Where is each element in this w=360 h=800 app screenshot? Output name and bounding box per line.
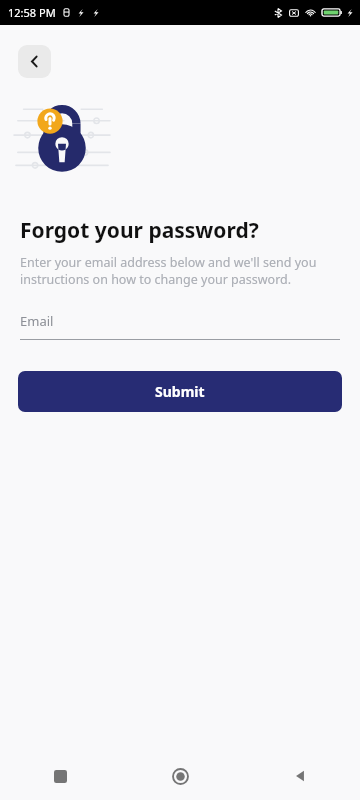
staticText: 12:58 PM (8, 5, 56, 20)
button[interactable]: Home (120, 752, 240, 800)
button[interactable]: Email (20, 312, 340, 340)
staticText: Submit (155, 382, 205, 401)
button[interactable]: Back (240, 752, 360, 800)
staticText: Email (20, 312, 54, 330)
button[interactable]: Back (18, 45, 51, 78)
button[interactable]: Recents (0, 752, 120, 800)
staticText: Enter your email address below and we'll… (20, 254, 317, 288)
button[interactable]: Submit (18, 371, 342, 412)
staticText: Forgot your password? (20, 216, 259, 245)
